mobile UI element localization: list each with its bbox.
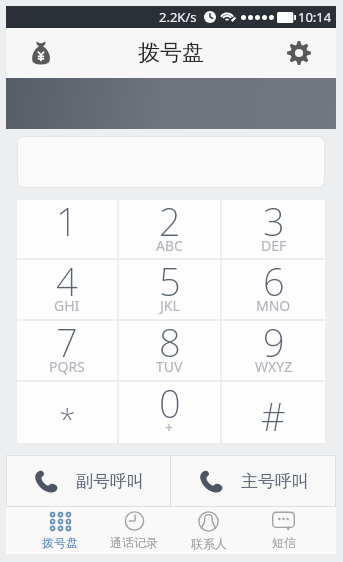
button[interactable]: 拨号盘 (23, 507, 97, 554)
button[interactable]: 副号呼叫 (7, 456, 170, 506)
staticText: GHI (54, 296, 80, 315)
staticText: * (59, 398, 76, 439)
button[interactable]: * (17, 382, 117, 443)
staticText: 联系人 (191, 536, 227, 551)
staticText: 短信 (272, 535, 296, 550)
button[interactable]: 3 (222, 200, 325, 258)
button[interactable]: 联系人 (171, 507, 246, 554)
button[interactable]: 5 (119, 260, 220, 319)
button[interactable]: 短信 (246, 507, 321, 554)
button[interactable]: 6 (222, 260, 325, 319)
staticText: 0 (159, 377, 181, 429)
staticText: 7 (56, 316, 78, 368)
staticText: WXYZ (255, 357, 293, 376)
button[interactable]: Settings (281, 35, 317, 71)
button[interactable]: 1 (17, 200, 117, 258)
staticText: 10:14 (298, 8, 332, 26)
staticText: 4 (56, 255, 78, 307)
staticText: 8 (159, 316, 181, 368)
staticText: 2 (159, 195, 181, 247)
staticText: 3 (263, 195, 285, 247)
button[interactable]: 4 (17, 260, 117, 319)
staticText: 副号呼叫 (76, 471, 144, 492)
button[interactable]: 2 (119, 200, 220, 258)
button[interactable]: # (222, 382, 325, 443)
button[interactable]: 0 (119, 382, 220, 443)
button[interactable]: 7 (17, 321, 117, 380)
button[interactable]: 9 (222, 321, 325, 380)
staticText: JKL (160, 296, 180, 315)
staticText: 主号呼叫 (241, 471, 309, 492)
staticText: 2.2K/s (159, 8, 197, 26)
button[interactable]: Balance (23, 35, 59, 71)
button[interactable]: 8 (119, 321, 220, 380)
staticText: ABC (156, 236, 183, 255)
staticText: + (165, 418, 174, 437)
staticText: 拨号盘 (138, 39, 204, 67)
staticText: 1 (56, 195, 78, 247)
staticText: 拨号盘 (42, 535, 78, 550)
staticText: 6 (263, 255, 285, 307)
staticText: 通话记录 (110, 535, 158, 550)
staticText: # (261, 390, 286, 442)
staticText: DEF (261, 236, 287, 255)
button[interactable]: Advertisement (6, 78, 336, 129)
staticText: TUV (156, 357, 183, 376)
staticText: 5 (159, 255, 181, 307)
button[interactable]: 通话记录 (97, 507, 171, 554)
staticText: MNO (256, 296, 291, 315)
button[interactable]: 主号呼叫 (171, 456, 335, 506)
staticText: PQRS (49, 357, 85, 376)
staticText: 9 (263, 316, 285, 368)
